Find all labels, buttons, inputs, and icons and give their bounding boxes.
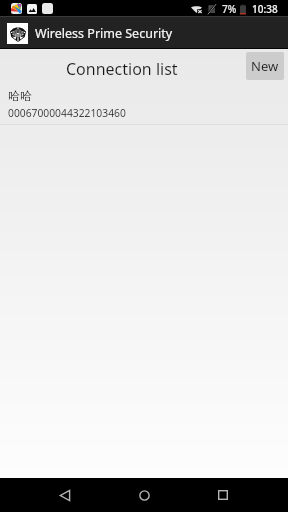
button[interactable]: Back <box>37 478 93 512</box>
button[interactable]: 哈哈 <box>0 88 288 125</box>
staticText: New <box>251 57 279 75</box>
staticText: 7% <box>222 2 237 16</box>
button[interactable]: New <box>246 52 284 80</box>
staticText: Wireless Prime Security <box>35 25 173 42</box>
button[interactable]: Recent apps <box>195 478 251 512</box>
staticText: 10:38 <box>252 2 278 16</box>
button[interactable]: Home <box>116 478 172 512</box>
staticText: 00067000044322103460 <box>8 106 126 120</box>
staticText: Connection list <box>66 58 178 80</box>
staticText: 哈哈 <box>8 88 32 103</box>
